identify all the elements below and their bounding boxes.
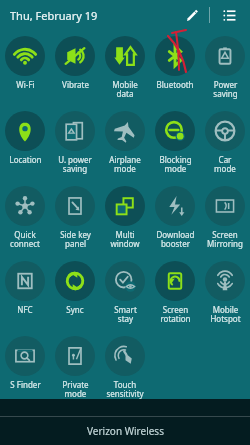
button[interactable]: Airplane mode: [105, 111, 145, 175]
staticText: Multi window: [110, 229, 140, 250]
button[interactable]: Location: [5, 111, 45, 165]
button[interactable]: Mobile data: [105, 36, 145, 100]
staticText: U. power saving: [58, 154, 92, 175]
staticText: Touch sensitivity: [106, 379, 144, 399]
staticText: Blocking mode: [159, 154, 192, 175]
staticText: Quick connect: [10, 229, 40, 250]
staticText: Bluetooth: [156, 79, 194, 90]
staticText: Vibrate: [62, 79, 89, 90]
button[interactable]: Screen rotation: [155, 261, 195, 325]
staticText: Mobile Hotspot: [210, 304, 241, 325]
button[interactable]: Vibrate: [55, 36, 95, 90]
staticText: NFC: [17, 304, 33, 315]
button[interactable]: Wi-Fi: [5, 36, 45, 90]
button[interactable]: Sync: [55, 261, 95, 315]
button[interactable]: Side key panel: [55, 186, 95, 250]
staticText: Mobile data: [112, 79, 138, 100]
button[interactable]: NFC: [5, 261, 45, 315]
staticText: Download booster: [156, 229, 195, 250]
button[interactable]: List: [218, 4, 240, 26]
staticText: Airplane mode: [109, 154, 141, 175]
button[interactable]: Car mode: [205, 111, 245, 175]
staticText: Side key panel: [60, 229, 91, 250]
button[interactable]: Blocking mode: [155, 111, 195, 175]
button[interactable]: Download booster: [155, 186, 195, 250]
button[interactable]: Edit: [181, 4, 203, 26]
staticText: Sync: [66, 304, 84, 315]
button[interactable]: Mobile Hotspot: [205, 261, 245, 325]
staticText: Screen Mirroring: [207, 229, 243, 250]
staticText: Location: [9, 154, 42, 165]
staticText: Private mode: [62, 379, 89, 399]
staticText: Smart stay: [114, 304, 137, 325]
staticText: S Finder: [10, 379, 41, 390]
button[interactable]: U. power saving: [55, 111, 95, 175]
button[interactable]: Private mode: [55, 336, 95, 399]
staticText: Car mode: [214, 154, 236, 175]
staticText: Verizon Wireless: [87, 424, 164, 438]
button[interactable]: Touch sensitivity: [105, 336, 145, 399]
staticText: Screen rotation: [160, 304, 191, 325]
button[interactable]: Quick connect: [5, 186, 45, 250]
button[interactable]: Multi window: [105, 186, 145, 250]
button[interactable]: Screen Mirroring: [205, 186, 245, 250]
button[interactable]: S Finder: [5, 336, 45, 390]
button[interactable]: Bluetooth: [155, 36, 195, 90]
staticText: Thu, February 19: [10, 8, 98, 23]
staticText: Power saving: [213, 79, 238, 100]
staticText: Wi-Fi: [16, 79, 35, 90]
button[interactable]: Smart stay: [105, 261, 145, 325]
button[interactable]: Power saving: [205, 36, 245, 100]
